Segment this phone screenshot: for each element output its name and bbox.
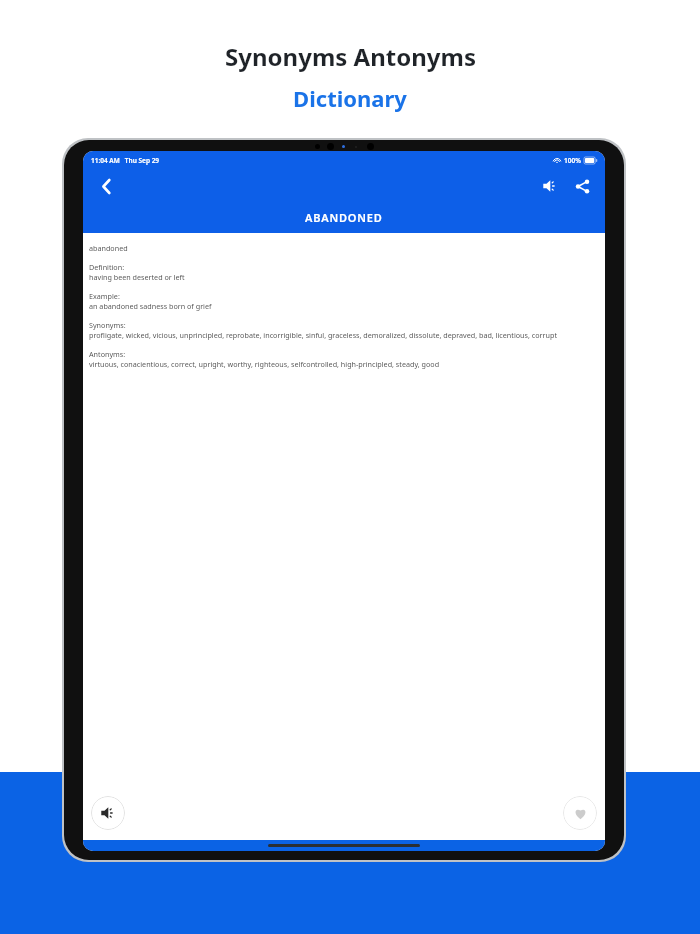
staticText: Definition: [89, 262, 125, 272]
staticText: virtuous, conacientious, correct, uprigh… [89, 359, 440, 369]
staticText: 11:04 AM Thu Sep 29 [91, 156, 160, 165]
staticText: Antonyms: [89, 349, 126, 359]
button[interactable]: Share [569, 173, 595, 199]
staticText: abandoned [89, 243, 128, 253]
staticText: Synonyms Antonyms [225, 40, 476, 73]
staticText: Example: [89, 291, 120, 301]
button[interactable]: Favorite [563, 796, 597, 830]
button[interactable]: Play pronunciation [91, 796, 125, 830]
button[interactable]: Sound [537, 173, 563, 199]
staticText: ABANDONED [305, 210, 383, 225]
staticText: an abandoned sadness born of grief [89, 301, 212, 311]
staticText: having been deserted or left [89, 272, 185, 282]
staticText: 100% [564, 156, 581, 165]
staticText: profligate, wicked, vicious, unprinciple… [89, 330, 557, 340]
button[interactable]: Back [93, 173, 119, 199]
staticText: Dictionary [293, 83, 407, 113]
staticText: Synonyms: [89, 320, 126, 330]
